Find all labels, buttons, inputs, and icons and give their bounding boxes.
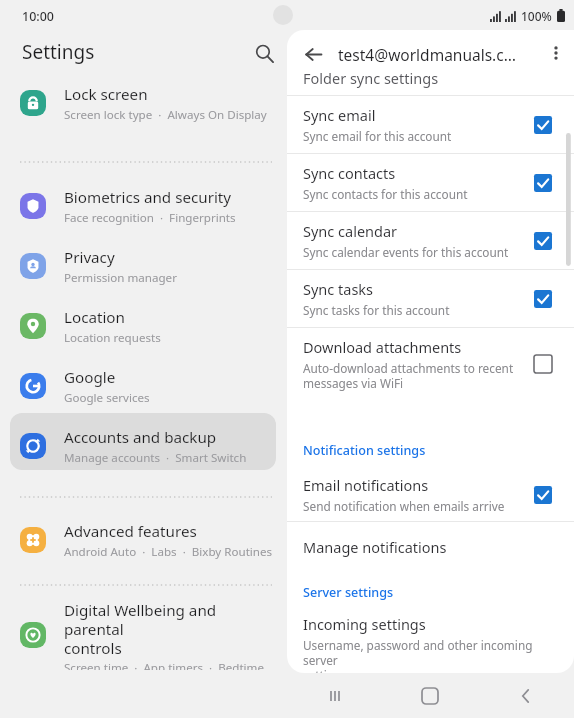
staticText: Auto-download attachments to recent mess…	[303, 360, 514, 391]
staticText: Folder sync settings	[303, 68, 439, 88]
staticText: Send notification when emails arrive	[303, 498, 505, 514]
staticText: Location	[64, 307, 125, 328]
staticText: test4@worldmanuals.c…	[338, 44, 538, 65]
button[interactable]: Manage notifications	[287, 522, 574, 572]
staticText: Location requests	[64, 330, 161, 346]
button[interactable]: Google	[10, 358, 276, 414]
staticText: Google services	[64, 390, 150, 406]
button[interactable]: Back	[295, 36, 331, 72]
staticText: Lock screen	[64, 84, 148, 105]
staticText: Settings	[22, 39, 95, 65]
staticText: Sync tasks	[303, 279, 374, 299]
button[interactable]: Digital Wellbeing and parental controls	[10, 600, 276, 670]
staticText: Sync calendar	[303, 221, 398, 241]
staticText: Advanced features	[64, 521, 197, 542]
staticText: Sync contacts	[303, 163, 396, 183]
button[interactable]: Advanced features	[10, 512, 276, 568]
staticText: Download attachments	[303, 337, 462, 357]
staticText: Privacy	[64, 247, 115, 268]
staticText: Screen time · App timers · Bedtime mode	[64, 660, 276, 670]
button[interactable]: Sync email	[526, 108, 560, 142]
staticText: Face recognition · Fingerprints	[64, 210, 236, 226]
staticText: Sync email for this account	[303, 128, 452, 144]
staticText: Accounts and backup	[64, 427, 217, 448]
staticText: Username, password and other incoming se…	[303, 637, 558, 673]
button[interactable]: Privacy	[10, 238, 276, 294]
staticText: Biometrics and security	[64, 187, 232, 208]
staticText: Permission manager	[64, 270, 177, 286]
staticText: Sync calendar events for this account	[303, 244, 509, 260]
button[interactable]: Download attachments	[526, 347, 560, 381]
staticText: Sync email	[303, 105, 376, 125]
button[interactable]: Sync calendar	[526, 224, 560, 258]
staticText: Sync contacts for this account	[303, 186, 468, 202]
staticText: Android Auto · Labs · Bixby Routines	[64, 544, 273, 560]
button[interactable]: Back	[478, 673, 574, 718]
button[interactable]: Download attachments	[287, 328, 574, 400]
button[interactable]: More options	[539, 36, 573, 70]
staticText: Sync tasks for this account	[303, 302, 450, 318]
button[interactable]: Incoming settings	[287, 608, 574, 673]
staticText: Email notifications	[303, 475, 429, 495]
staticText: Digital Wellbeing and parental controls	[64, 600, 276, 658]
staticText: 100%	[521, 8, 552, 24]
staticText: Incoming settings	[303, 614, 426, 634]
staticText: Notification settings	[303, 442, 426, 459]
staticText: Manage accounts · Smart Switch	[64, 450, 247, 466]
button[interactable]: Email notifications	[287, 466, 574, 523]
staticText: Google	[64, 367, 116, 388]
button[interactable]: Location	[10, 298, 276, 354]
button[interactable]: Sync contacts	[287, 154, 574, 211]
button[interactable]: Email notifications	[526, 478, 560, 512]
staticText: 10:00	[22, 8, 55, 25]
button[interactable]: Lock screen	[10, 75, 276, 131]
button[interactable]: Sync calendar	[287, 212, 574, 269]
staticText: Screen lock type · Always On Display	[64, 107, 267, 123]
button[interactable]: Sync tasks	[287, 270, 574, 327]
button[interactable]: Search	[246, 35, 282, 71]
button[interactable]: Recents	[287, 673, 382, 718]
button[interactable]: Sync contacts	[526, 166, 560, 200]
staticText: Server settings	[303, 584, 394, 601]
button[interactable]: Biometrics and security	[10, 178, 276, 234]
staticText: Manage notifications	[303, 537, 447, 557]
button[interactable]	[10, 413, 276, 470]
button[interactable]: Sync tasks	[526, 282, 560, 316]
button[interactable]: Sync email	[287, 96, 574, 153]
button[interactable]: Home	[382, 673, 478, 718]
